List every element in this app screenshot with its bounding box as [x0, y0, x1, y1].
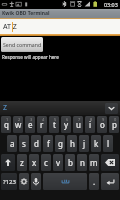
button[interactable]: e: [25, 116, 35, 133]
staticText: 4: [42, 117, 45, 122]
button[interactable]: t: [49, 116, 59, 133]
staticText: k: [94, 138, 99, 149]
staticText: b: [68, 157, 73, 168]
button[interactable]: v: [53, 154, 63, 171]
button[interactable]: Space: [43, 173, 87, 190]
staticText: q: [4, 119, 9, 130]
button[interactable]: AT Z: [0, 18, 120, 36]
button[interactable]: q: [1, 116, 11, 133]
button[interactable]: n: [77, 154, 87, 171]
button[interactable]: Settings: [19, 173, 29, 190]
staticText: p: [112, 119, 117, 130]
button[interactable]: g: [55, 135, 65, 152]
button[interactable]: d: [31, 135, 41, 152]
staticText: m: [90, 157, 98, 168]
staticText: r: [40, 119, 44, 130]
staticText: 7: [78, 117, 81, 122]
button[interactable]: Backspace: [101, 154, 119, 171]
staticText: Response will appear here: [2, 54, 59, 60]
staticText: 5: [54, 117, 57, 122]
staticText: 0: [114, 117, 117, 122]
staticText: w: [15, 119, 22, 130]
button[interactable]: p: [109, 116, 119, 133]
button[interactable]: c: [41, 154, 51, 171]
button[interactable]: a: [7, 135, 17, 152]
staticText: 03:03: [104, 1, 118, 8]
staticText: i: [89, 119, 92, 130]
staticText: 6: [66, 117, 69, 122]
button[interactable]: i: [85, 116, 95, 133]
button[interactable]: b: [65, 154, 75, 171]
staticText: v: [56, 157, 61, 168]
button[interactable]: More suggestions: [105, 103, 118, 114]
button[interactable]: .: [89, 173, 99, 190]
button[interactable]: l: [103, 135, 113, 152]
button[interactable]: u: [73, 116, 83, 133]
button[interactable]: m: [89, 154, 99, 171]
button[interactable]: z: [17, 154, 27, 171]
staticText: 2: [18, 117, 21, 122]
button[interactable]: x: [29, 154, 39, 171]
button[interactable]: Send command: [1, 37, 43, 52]
button[interactable]: f: [43, 135, 53, 152]
staticText: h: [70, 138, 75, 149]
staticText: g: [58, 138, 63, 149]
staticText: e: [28, 119, 33, 130]
staticText: u: [76, 119, 81, 130]
staticText: f: [47, 138, 50, 149]
button[interactable]: s: [19, 135, 29, 152]
staticText: y: [64, 119, 69, 130]
staticText: t: [53, 119, 56, 130]
staticText: ?123: [3, 178, 16, 186]
staticText: 1: [6, 117, 9, 122]
button[interactable]: Voice input: [31, 173, 41, 190]
button[interactable]: j: [79, 135, 89, 152]
button[interactable]: o: [97, 116, 107, 133]
staticText: o: [100, 119, 105, 130]
staticText: Kwik OBD Terminal: [2, 10, 50, 17]
staticText: 8: [90, 117, 93, 122]
button[interactable]: Enter: [101, 173, 119, 190]
staticText: 3: [30, 117, 33, 122]
staticText: AT Z: [3, 22, 17, 32]
staticText: s: [22, 138, 26, 149]
staticText: Z: [3, 103, 8, 113]
staticText: Send command: [3, 41, 42, 48]
staticText: l: [107, 138, 110, 149]
staticText: x: [32, 157, 37, 168]
staticText: d: [34, 138, 39, 149]
staticText: a: [10, 138, 15, 149]
staticText: n: [80, 157, 85, 168]
staticText: 9: [102, 117, 105, 122]
staticText: j: [83, 138, 86, 149]
staticText: z: [20, 157, 24, 168]
button[interactable]: h: [67, 135, 77, 152]
staticText: c: [44, 157, 48, 168]
button[interactable]: r: [37, 116, 47, 133]
button[interactable]: Shift: [1, 154, 15, 171]
button[interactable]: k: [91, 135, 101, 152]
button[interactable]: y: [61, 116, 71, 133]
button[interactable]: ?123: [1, 173, 17, 190]
button[interactable]: w: [13, 116, 23, 133]
staticText: .: [93, 176, 96, 187]
